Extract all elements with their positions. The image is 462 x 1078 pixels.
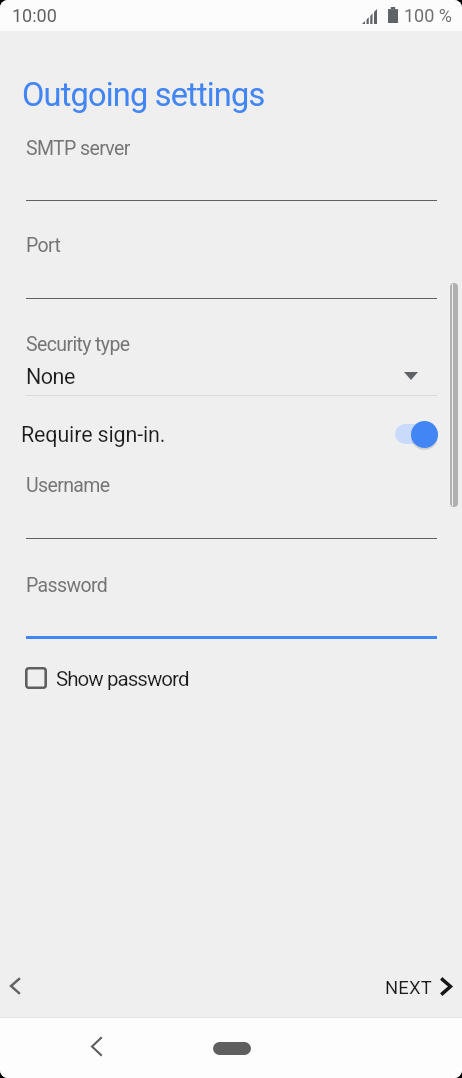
staticText: Username [26,474,110,497]
staticText: Show password [56,667,189,691]
button[interactable]: Port [26,226,437,304]
button[interactable]: Show password [20,660,200,696]
staticText: Password [26,574,108,597]
staticText: 10:00 [12,5,57,26]
button[interactable]: Username [26,466,437,544]
button[interactable]: Security type [0,330,462,396]
button[interactable]: Password [26,566,437,643]
button[interactable]: Home [198,1030,266,1066]
staticText: Require sign-in. [21,422,166,447]
staticText: Security type [26,333,130,356]
staticText: Port [26,234,61,257]
staticText: None [26,364,75,389]
staticText: SMTP server [26,137,130,160]
staticText: 100 % [404,5,452,26]
button[interactable]: Require sign-in. [0,416,462,454]
button[interactable]: SMTP server [26,129,437,206]
staticText: NEXT [385,977,432,999]
button[interactable]: Back [74,1025,120,1071]
staticText: Outgoing settings [22,76,265,114]
button[interactable]: NEXT [375,963,460,1009]
button[interactable]: Back [0,963,30,1009]
